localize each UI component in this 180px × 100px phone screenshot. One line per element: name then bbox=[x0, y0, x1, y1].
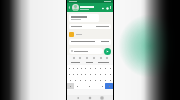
button[interactable]: Key bbox=[71, 71, 75, 77]
button[interactable]: Key bbox=[67, 65, 71, 71]
button[interactable]: Keyboard tool bbox=[72, 56, 75, 59]
button[interactable]: Send bbox=[104, 48, 111, 55]
button[interactable]: Key bbox=[73, 77, 78, 83]
button[interactable]: Key bbox=[67, 71, 71, 77]
button[interactable]: Key bbox=[88, 71, 93, 77]
button[interactable]: Key bbox=[67, 83, 74, 89]
button[interactable]: Key bbox=[98, 71, 103, 77]
button[interactable]: Key bbox=[108, 65, 113, 71]
other: Back bbox=[68, 6, 71, 9]
button[interactable]: Keyboard tool bbox=[99, 56, 102, 59]
button[interactable]: Back bbox=[77, 97, 79, 99]
button[interactable] bbox=[69, 48, 103, 54]
button[interactable]: Back bbox=[67, 3, 113, 12]
button[interactable]: Key bbox=[99, 83, 105, 89]
button[interactable]: Key bbox=[83, 65, 88, 71]
button[interactable]: Video call bbox=[101, 6, 105, 10]
button[interactable]: Keyboard tool bbox=[78, 56, 81, 59]
button[interactable]: Key bbox=[108, 71, 113, 77]
button[interactable]: Key bbox=[80, 83, 99, 89]
button[interactable]: Key bbox=[93, 77, 98, 83]
button[interactable]: Key bbox=[67, 77, 73, 83]
button[interactable]: Key bbox=[105, 83, 113, 89]
button[interactable] bbox=[97, 62, 110, 63]
button[interactable]: More options bbox=[109, 6, 112, 9]
button[interactable] bbox=[69, 24, 111, 29]
button[interactable]: Keyboard tool bbox=[85, 56, 88, 59]
button[interactable]: Key bbox=[103, 71, 108, 77]
button[interactable]: Key bbox=[88, 77, 93, 83]
button[interactable]: Key bbox=[88, 65, 93, 71]
button[interactable]: Key bbox=[98, 77, 103, 83]
button[interactable]: Key bbox=[75, 65, 79, 71]
button[interactable]: Key bbox=[103, 65, 108, 71]
button[interactable]: Keyboard tool bbox=[92, 56, 95, 59]
button[interactable]: Key bbox=[93, 65, 98, 71]
button[interactable]: Key bbox=[78, 77, 83, 83]
button[interactable]: Key bbox=[79, 71, 83, 77]
button[interactable]: Key bbox=[103, 77, 108, 83]
button[interactable]: Key bbox=[83, 71, 88, 77]
button[interactable]: Key bbox=[71, 65, 75, 71]
button[interactable]: Key bbox=[83, 77, 88, 83]
button[interactable] bbox=[85, 62, 94, 63]
button[interactable]: Key bbox=[75, 71, 79, 77]
button[interactable] bbox=[70, 62, 81, 63]
button[interactable]: Key bbox=[98, 65, 103, 71]
button[interactable]: Key bbox=[93, 71, 98, 77]
button[interactable]: Key bbox=[74, 83, 80, 89]
button[interactable] bbox=[69, 39, 111, 45]
button[interactable]: Keyboard tool bbox=[105, 56, 108, 59]
button[interactable]: Voice call bbox=[105, 6, 109, 10]
button[interactable] bbox=[69, 14, 99, 22]
button[interactable]: Key bbox=[108, 77, 113, 83]
button[interactable]: Key bbox=[79, 65, 83, 71]
button[interactable]: Sticker bbox=[69, 32, 74, 37]
other: Contact photo bbox=[72, 4, 79, 11]
